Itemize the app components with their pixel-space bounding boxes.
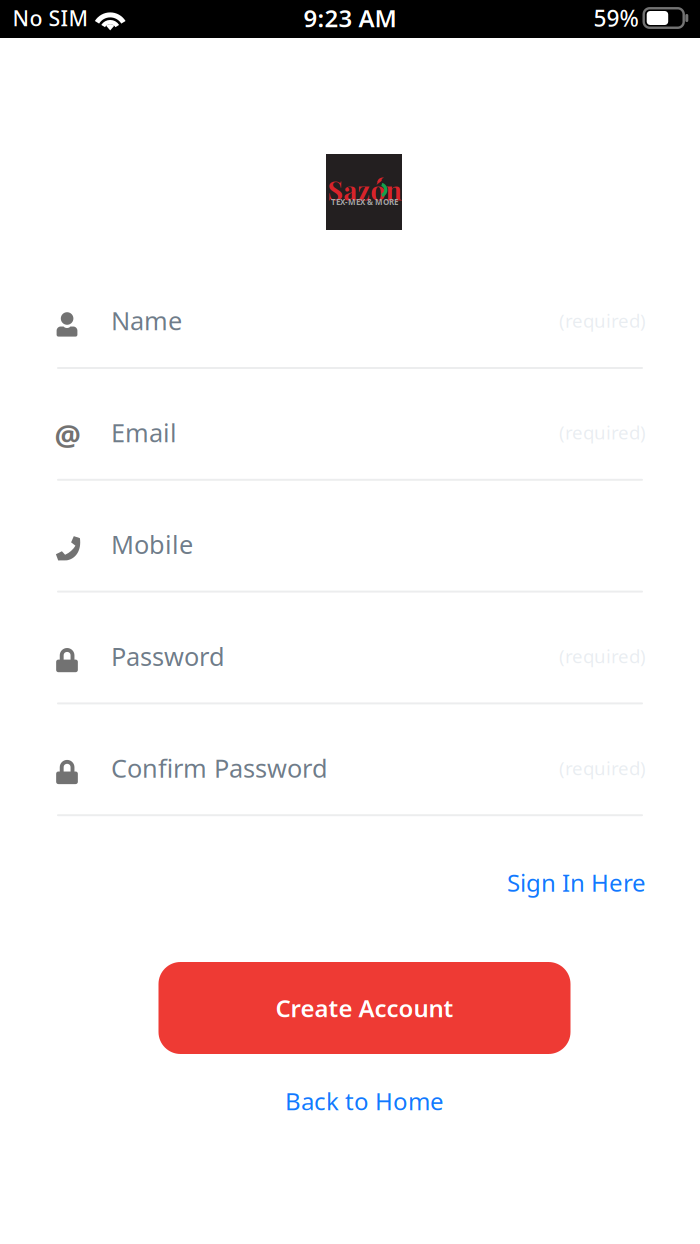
- button[interactable]: Mobile: [57, 494, 643, 604]
- staticText: (required): [559, 420, 646, 445]
- button[interactable]: @: [57, 382, 643, 492]
- button[interactable]: Create Account: [158, 962, 570, 1054]
- button[interactable]: Back to Home: [249, 1075, 479, 1127]
- button[interactable]: Name: [57, 270, 643, 380]
- staticText: TEX-MEX & MORE: [331, 197, 398, 207]
- staticText: Mobile: [111, 527, 193, 561]
- staticText: (required): [559, 644, 646, 668]
- staticText: No SIM: [12, 4, 88, 32]
- staticText: @: [54, 415, 80, 454]
- staticText: Password: [111, 639, 225, 673]
- staticText: Name: [111, 304, 182, 337]
- staticText: Sazón: [327, 172, 401, 207]
- button[interactable]: Password: [57, 606, 643, 716]
- staticText: Confirm Password: [111, 751, 328, 785]
- button[interactable]: Confirm Password: [57, 718, 643, 828]
- staticText: Create Account: [275, 992, 453, 1024]
- staticText: 9:23 AM: [303, 2, 396, 34]
- staticText: (required): [559, 756, 646, 780]
- staticText: Back to Home: [285, 1085, 444, 1117]
- button[interactable]: Sign In Here: [406, 856, 646, 908]
- staticText: 59%: [593, 3, 638, 33]
- staticText: Email: [111, 415, 177, 449]
- staticText: (required): [559, 308, 646, 333]
- staticText: Sign In Here: [507, 867, 646, 898]
